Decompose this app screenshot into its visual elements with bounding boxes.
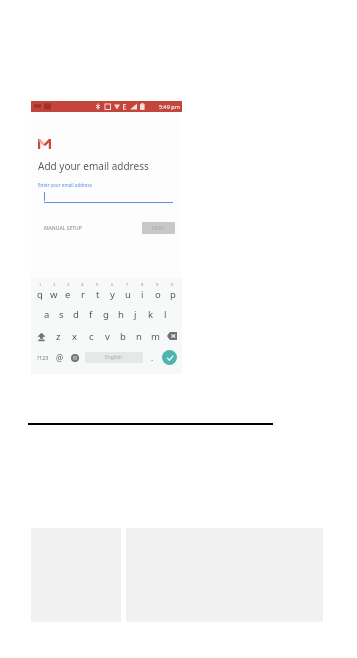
staticText: f	[89, 308, 93, 321]
staticText: c	[89, 330, 94, 343]
staticText: Add your email address	[38, 159, 149, 173]
staticText: d	[73, 308, 79, 321]
staticText: b	[120, 330, 126, 343]
button[interactable]: z	[50, 325, 67, 347]
button[interactable]: 9	[150, 282, 165, 303]
staticText: 8	[141, 282, 144, 288]
staticText: n	[136, 330, 142, 343]
staticText: z	[56, 330, 61, 343]
staticText: 6	[111, 282, 114, 288]
staticText: 1	[39, 282, 42, 288]
button[interactable]: v	[99, 325, 115, 347]
button[interactable]: ?123	[33, 347, 52, 368]
button[interactable]: g	[98, 303, 113, 325]
button[interactable]: 8	[135, 282, 150, 303]
staticText: s	[59, 308, 64, 321]
button[interactable]: f	[83, 303, 98, 325]
staticText: e	[65, 288, 71, 301]
button[interactable]: English	[85, 352, 143, 363]
staticText: t	[96, 288, 100, 301]
button[interactable]: n	[131, 325, 147, 347]
button[interactable]: d	[68, 303, 83, 325]
staticText: MANUAL SETUP	[44, 225, 82, 232]
button[interactable]: MANUAL SETUP	[38, 225, 82, 232]
staticText: q	[37, 288, 43, 301]
button[interactable]: k	[143, 303, 158, 325]
staticText: English	[105, 354, 123, 361]
staticText: v	[105, 330, 110, 343]
staticText: u	[125, 288, 131, 301]
staticText: y	[110, 288, 115, 301]
staticText: .	[151, 352, 154, 363]
button[interactable]: NEXT	[142, 222, 175, 234]
button[interactable]: m	[147, 325, 163, 347]
staticText: 9	[156, 282, 159, 288]
button[interactable]: 3	[61, 282, 75, 303]
staticText: k	[148, 308, 154, 321]
button[interactable]: a	[40, 303, 54, 325]
button[interactable]: c	[83, 325, 99, 347]
button[interactable]: Enter	[158, 347, 180, 368]
staticText: @	[56, 352, 64, 363]
staticText: 4	[81, 282, 84, 288]
staticText: i	[141, 288, 144, 301]
button[interactable]: Backspace	[163, 325, 180, 347]
button[interactable]: 1	[33, 282, 47, 303]
staticText: Enter your email address	[38, 182, 92, 188]
button[interactable]: 6	[105, 282, 120, 303]
staticText: p	[170, 288, 176, 301]
button[interactable]: 7	[120, 282, 135, 303]
button[interactable]: b	[115, 325, 131, 347]
button[interactable]: .	[146, 347, 158, 368]
button[interactable]: h	[113, 303, 128, 325]
button[interactable]: 4	[75, 282, 90, 303]
staticText: r	[81, 288, 85, 301]
staticText: l	[164, 308, 167, 321]
staticText: ?123	[37, 354, 49, 361]
button[interactable]: @	[52, 347, 67, 368]
staticText: w	[50, 288, 58, 301]
staticText: h	[118, 308, 124, 321]
staticText: j	[134, 308, 137, 321]
button[interactable]: 0	[165, 282, 180, 303]
staticText: 5	[96, 282, 99, 288]
staticText: x	[72, 330, 78, 343]
staticText: 5:49 pm	[159, 103, 180, 110]
button[interactable]: Shift	[33, 325, 50, 347]
button[interactable]: Change language	[67, 347, 82, 368]
button[interactable]: j	[128, 303, 143, 325]
staticText: 0	[171, 282, 174, 288]
staticText: 3	[67, 282, 70, 288]
button[interactable]: s	[54, 303, 68, 325]
button[interactable]: l	[158, 303, 173, 325]
button[interactable]: 5	[90, 282, 105, 303]
staticText: 2	[53, 282, 56, 288]
staticText: o	[155, 288, 161, 301]
staticText: NEXT	[152, 225, 165, 232]
staticText: g	[103, 308, 109, 321]
button[interactable]: 2	[47, 282, 61, 303]
button[interactable]: x	[67, 325, 83, 347]
staticText: a	[44, 308, 50, 321]
staticText: 7	[126, 282, 129, 288]
staticText: m	[151, 330, 160, 343]
